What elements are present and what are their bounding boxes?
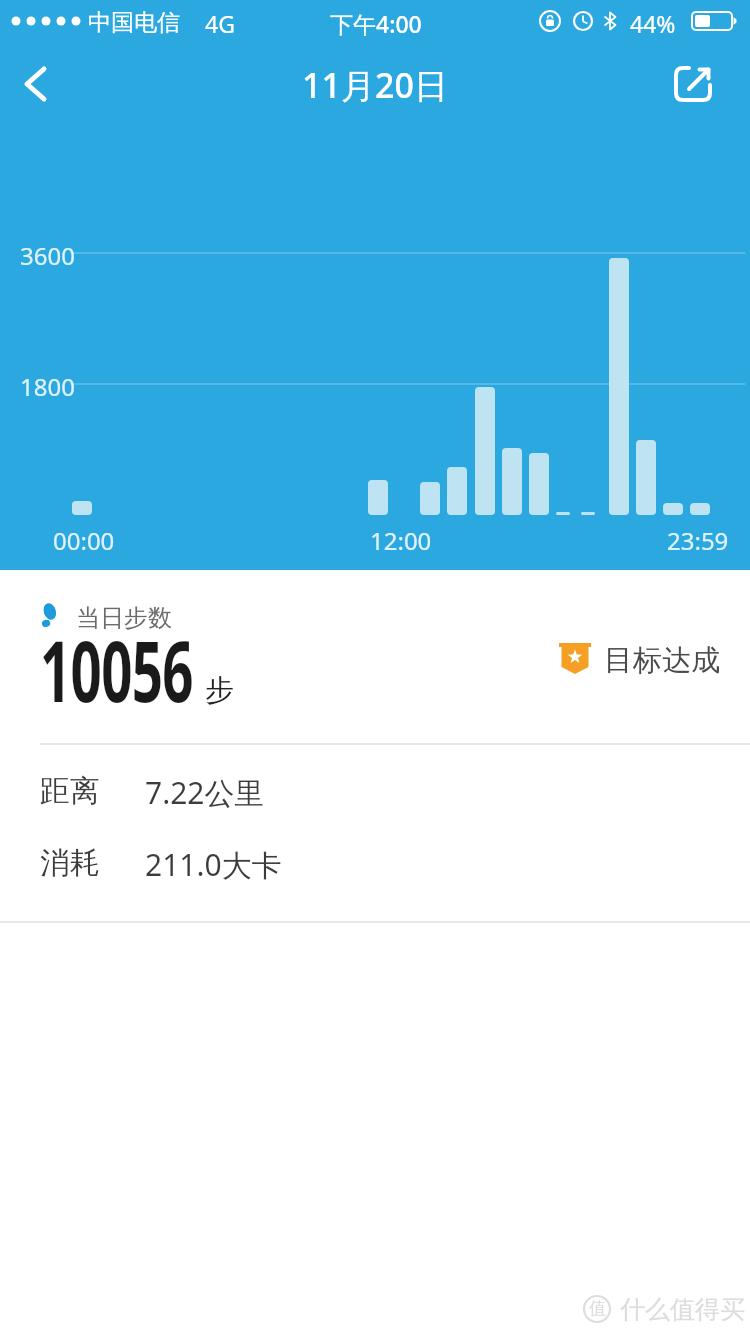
button[interactable] (658, 52, 728, 116)
staticText: 步 (205, 672, 234, 709)
staticText: 1800 (20, 370, 75, 403)
button[interactable] (8, 58, 64, 110)
button[interactable]: 目标达成 (540, 630, 740, 680)
staticText: 211.0大卡 (145, 844, 282, 885)
staticText: 下午4:00 (330, 8, 422, 39)
staticText: 44% (630, 8, 676, 39)
button[interactable]: 消耗 (0, 832, 750, 892)
staticText: 00:00 (53, 524, 115, 557)
staticText: 23:59 (667, 524, 729, 557)
button[interactable]: 距离 (0, 760, 750, 820)
staticText: 4G (205, 8, 235, 39)
staticText: 值 (589, 1298, 606, 1319)
staticText: 距离 (40, 772, 100, 810)
staticText: 什么值得买 (620, 1294, 745, 1325)
staticText: 11月20日 (0, 62, 750, 108)
staticText: 7.22公里 (145, 772, 265, 813)
staticText: 中国电信 (88, 8, 180, 37)
staticText: 目标达成 (604, 642, 720, 679)
staticText: 3600 (20, 239, 75, 272)
staticText: 12:00 (370, 524, 432, 557)
staticText: 10056 (40, 612, 193, 726)
staticText: 消耗 (40, 844, 100, 882)
staticText: 当日步数 (76, 603, 172, 633)
